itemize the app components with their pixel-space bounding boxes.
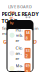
staticText: GET STARTED [3, 38, 37, 45]
staticText: $32 [25, 48, 29, 58]
button[interactable]: Plumber [7, 26, 32, 44]
staticText: PEOPLE READY TO GO [1, 10, 38, 24]
button[interactable]: Cleaner [7, 44, 32, 62]
staticText: Plumber [15, 27, 22, 43]
button[interactable]: Mover [7, 62, 32, 72]
staticText: Nearby [9, 9, 15, 25]
staticText: Mover [15, 63, 22, 72]
staticText: LIVE BOARD [8, 4, 32, 9]
staticText: $48 [25, 30, 29, 40]
staticText: find a pro near you in minutes [2, 25, 38, 36]
staticText: $90 [25, 63, 29, 72]
staticText: Cleaner [15, 45, 22, 61]
